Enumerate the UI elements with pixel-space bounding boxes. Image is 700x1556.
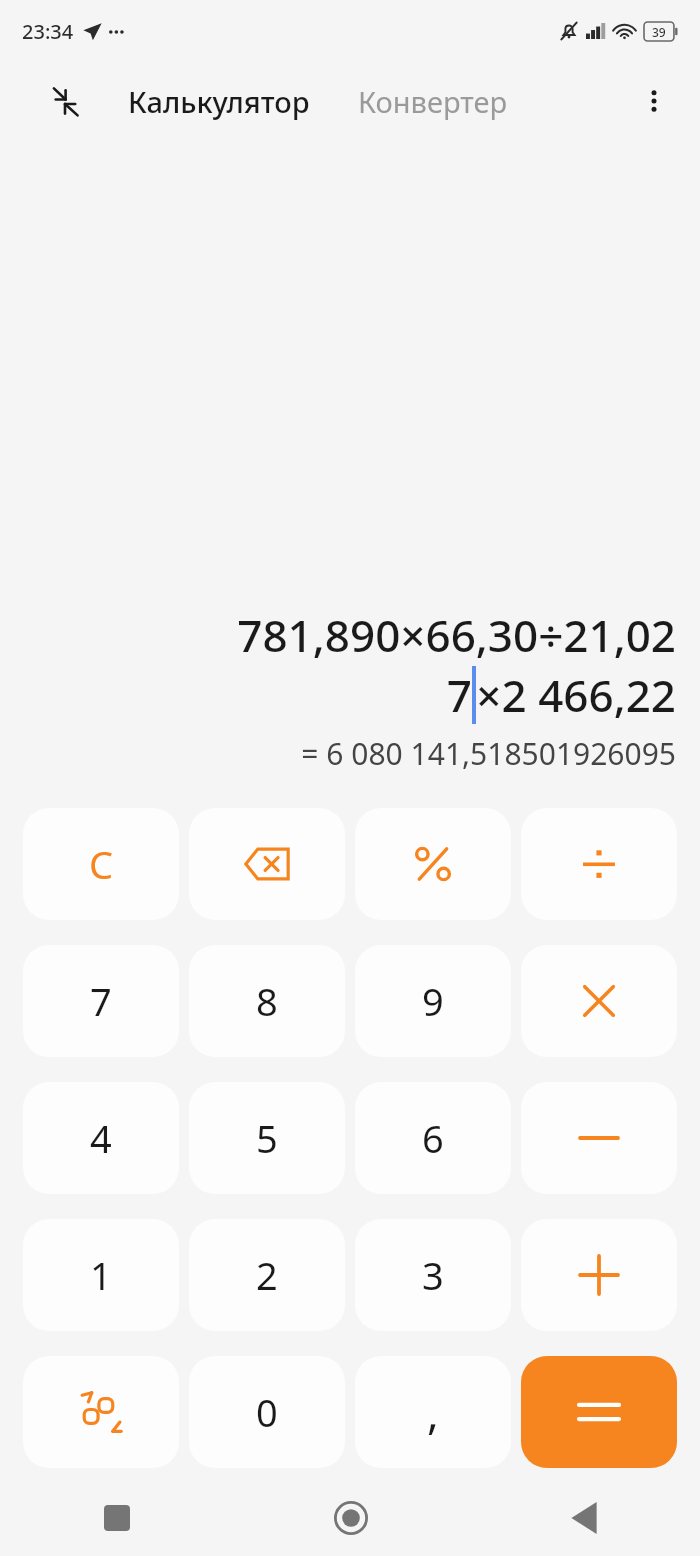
staticText: 781,890×66,30÷21,02 [26,605,676,665]
button[interactable]: Home [234,1480,467,1556]
staticText: C [89,838,114,890]
button[interactable]: Scientific functions [23,1356,179,1468]
button[interactable]: Percent [355,808,511,920]
staticText: 7 [446,665,472,725]
button[interactable]: Minus [521,1082,677,1194]
button[interactable]: 0 [189,1356,345,1468]
button[interactable]: Back [467,1480,700,1556]
button[interactable]: Divide [521,808,677,920]
button[interactable]: , [355,1356,511,1468]
button[interactable]: 5 [189,1082,345,1194]
button[interactable]: 8 [189,945,345,1057]
button[interactable]: 2 [189,1219,345,1331]
staticText: 0 [256,1386,278,1438]
staticText: Калькулятор [128,82,310,121]
button[interactable]: Recents [0,1480,234,1556]
button[interactable]: Multiply [521,945,677,1057]
button[interactable]: Plus [521,1219,677,1331]
staticText: 2 [256,1249,278,1301]
button[interactable]: More options [630,77,678,125]
staticText: , [427,1382,439,1442]
button[interactable]: Конвертер [358,82,508,121]
staticText: 1 [90,1249,112,1301]
staticText: ×2 466,22 [476,665,676,725]
button[interactable]: 9 [355,945,511,1057]
button[interactable]: C [23,808,179,920]
button[interactable]: 4 [23,1082,179,1194]
staticText: = 6 080 141,518501926095 [26,733,676,774]
staticText: 8 [256,975,278,1027]
button[interactable]: 6 [355,1082,511,1194]
staticText: 7 [90,975,112,1027]
staticText: 3 [422,1249,444,1301]
staticText: 39 [652,24,666,40]
staticText: Конвертер [358,82,508,121]
staticText: 4 [90,1112,112,1164]
button[interactable]: 7 [23,945,179,1057]
staticText: 23:34 [22,18,74,45]
staticText: 9 [422,975,444,1027]
staticText: 6 [422,1112,444,1164]
button[interactable]: Backspace [189,808,345,920]
button[interactable]: 3 [355,1219,511,1331]
button[interactable]: Калькулятор [128,82,310,121]
button[interactable]: Equals [521,1356,677,1468]
button[interactable]: 1 [23,1219,179,1331]
button[interactable]: Collapse [42,78,88,124]
staticText: 5 [256,1112,278,1164]
